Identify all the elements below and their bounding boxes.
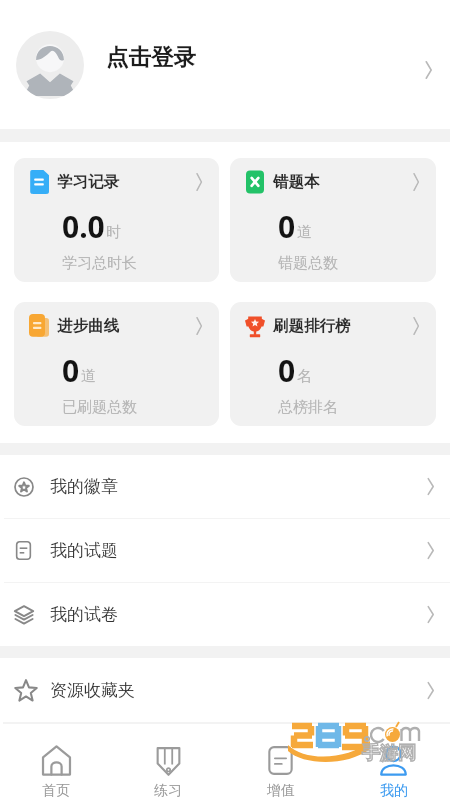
button[interactable]: 资源收藏夹 [0, 658, 450, 722]
staticText: 我的徽章 [50, 476, 118, 497]
staticText: 道 [297, 223, 312, 242]
staticText: 0.0 [62, 206, 105, 247]
staticText: 增值 [267, 782, 295, 800]
staticText: 我的 [380, 782, 408, 800]
button[interactable]: 学习记录 [14, 158, 219, 282]
staticText: 资源收藏夹 [50, 680, 135, 701]
button[interactable]: 增值 [224, 724, 337, 800]
staticText: 我的试题 [50, 540, 118, 561]
staticText: 学习总时长 [62, 254, 137, 273]
staticText: 点击登录 [106, 43, 196, 71]
button[interactable]: 我的试卷 [0, 583, 450, 646]
staticText: 道 [81, 367, 96, 386]
staticText: 时 [106, 223, 121, 242]
staticText: 首页 [42, 782, 70, 800]
staticText: 刷题排行榜 [273, 316, 351, 336]
staticText: 进步曲线 [57, 316, 119, 336]
staticText: 0 [278, 350, 296, 391]
staticText: 总榜排名 [278, 398, 338, 417]
staticText: 0 [278, 206, 296, 247]
button[interactable]: 练习 [112, 724, 224, 800]
staticText: 0 [62, 350, 80, 391]
button[interactable]: 首页 [0, 724, 112, 800]
button[interactable]: 我的 [337, 724, 450, 800]
button[interactable]: 我的徽章 [0, 455, 450, 518]
button[interactable]: 我的试题 [0, 519, 450, 582]
staticText: 错题总数 [278, 254, 338, 273]
staticText: 错题本 [273, 172, 320, 192]
staticText: 我的试卷 [50, 604, 118, 625]
button[interactable]: 点击登录 [0, 0, 450, 129]
staticText: 练习 [154, 782, 182, 800]
button[interactable]: 错题本 [230, 158, 436, 282]
button[interactable]: 进步曲线 [14, 302, 219, 426]
staticText: 手游网 [362, 742, 416, 765]
button[interactable]: 刷题排行榜 [230, 302, 436, 426]
staticText: 名 [297, 367, 312, 386]
staticText: 已刷题总数 [62, 398, 137, 417]
staticText: 学习记录 [57, 172, 119, 192]
